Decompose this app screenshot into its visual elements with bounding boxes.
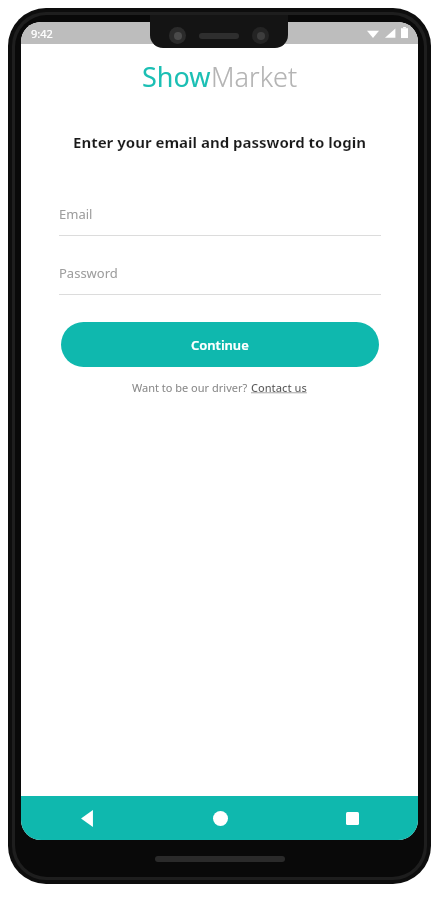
staticText: Want to be our driver? [132, 380, 251, 395]
staticText: Continue [191, 336, 249, 354]
staticText: Contact us [251, 380, 307, 395]
button[interactable]: Password [59, 258, 381, 295]
staticText: Password [59, 264, 118, 282]
staticText: 9:42 [31, 26, 53, 41]
button[interactable]: Want to be our driver? [132, 380, 307, 395]
button[interactable]: Email [59, 199, 381, 236]
button[interactable]: Back [21, 796, 154, 840]
staticText: Email [59, 205, 93, 223]
staticText: Market [211, 58, 298, 95]
staticText: Show [142, 58, 211, 95]
button[interactable]: Recent apps [286, 796, 418, 840]
button[interactable]: Home [154, 796, 286, 840]
button[interactable]: Continue [61, 322, 379, 367]
staticText: Enter your email and password to login [73, 132, 366, 152]
